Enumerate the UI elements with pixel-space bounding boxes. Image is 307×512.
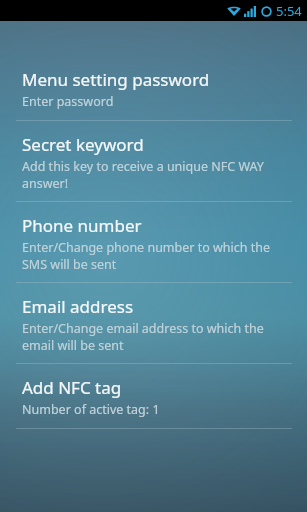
- staticText: Add this key to receive a unique NFC WAY…: [22, 158, 264, 191]
- button[interactable]: Add NFC tag: [0, 376, 307, 428]
- staticText: Enter password: [22, 93, 114, 110]
- button[interactable]: Phone number: [0, 214, 307, 282]
- staticText: Phone number: [22, 214, 142, 237]
- button[interactable]: Email address: [0, 295, 307, 363]
- staticText: Add NFC tag: [22, 376, 122, 399]
- staticText: Secret keyword: [22, 133, 144, 156]
- staticText: Email address: [22, 295, 134, 318]
- staticText: Number of active tag: 1: [22, 401, 160, 418]
- staticText: Enter/Change phone number to which the S…: [22, 239, 271, 272]
- staticText: Enter/Change email address to which the …: [22, 320, 264, 353]
- staticText: Menu setting password: [22, 68, 210, 91]
- button[interactable]: Menu setting password: [0, 68, 307, 120]
- staticText: 5:54: [276, 2, 302, 20]
- button[interactable]: Secret keyword: [0, 133, 307, 201]
